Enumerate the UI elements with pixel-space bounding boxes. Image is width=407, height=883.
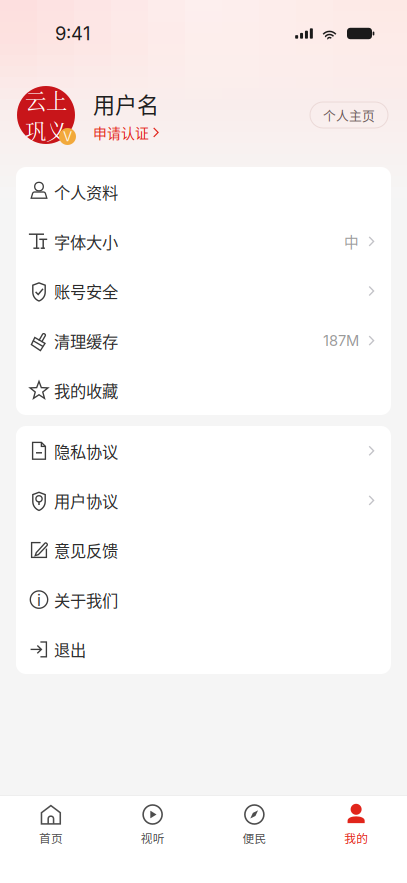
button[interactable]: 申请认证 (93, 122, 159, 142)
staticText: 关于我们 (54, 588, 118, 611)
staticText: 意见反馈 (54, 538, 118, 562)
button[interactable]: 个人主页 (310, 102, 388, 128)
staticText: 个人主页 (323, 106, 375, 124)
button[interactable]: 我的收藏 (16, 365, 391, 415)
button[interactable]: 字体大小 (16, 217, 391, 266)
button[interactable]: i (16, 575, 391, 624)
staticText: 用户名 (93, 87, 159, 119)
staticText: 187M (323, 332, 359, 349)
staticText: 便民 (242, 829, 266, 846)
staticText: 中 (344, 231, 359, 252)
staticText: 个人资料 (54, 180, 118, 204)
button[interactable]: 首页 (0, 803, 102, 846)
button[interactable]: 个人资料 (16, 167, 391, 217)
staticText: V (63, 128, 72, 144)
button[interactable]: 隐私协议 (16, 426, 391, 476)
staticText: 巩义 (25, 115, 67, 146)
staticText: 首页 (39, 829, 63, 846)
staticText: 退出 (54, 637, 86, 661)
button[interactable]: 视听 (102, 803, 204, 846)
staticText: 我的 (344, 829, 368, 846)
staticText: 字体大小 (54, 230, 118, 253)
staticText: 视听 (141, 829, 165, 846)
staticText: 清理缓存 (54, 329, 118, 352)
staticText: 用户协议 (54, 489, 118, 512)
staticText: i (37, 590, 41, 610)
staticText: 申请认证 (93, 122, 149, 142)
button[interactable]: 账号安全 (16, 266, 391, 316)
staticText: 隐私协议 (54, 439, 118, 463)
button[interactable]: 退出 (16, 624, 391, 674)
button[interactable]: 清理缓存 (16, 316, 391, 365)
staticText: 账号安全 (54, 279, 118, 303)
staticText: 9:41 (55, 22, 90, 45)
button[interactable]: 我的 (305, 803, 407, 846)
button[interactable]: 便民 (203, 803, 305, 846)
staticText: 我的收藏 (54, 378, 118, 402)
staticText: 云上 (25, 84, 67, 115)
button[interactable]: 用户协议 (16, 476, 391, 525)
button[interactable]: 意见反馈 (16, 525, 391, 575)
